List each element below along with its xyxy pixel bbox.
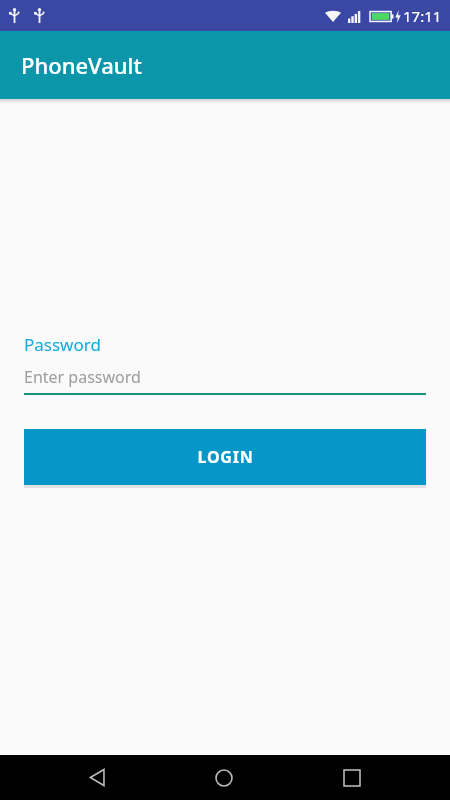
- button[interactable]: Enter password: [24, 366, 426, 395]
- staticText: LOGIN: [197, 446, 254, 468]
- staticText: Enter password: [24, 366, 141, 388]
- button[interactable]: Recent apps: [322, 755, 382, 800]
- staticText: Password: [24, 333, 101, 356]
- button[interactable]: LOGIN: [24, 429, 426, 485]
- staticText: PhoneVault: [21, 50, 142, 80]
- staticText: 17:11: [403, 6, 442, 26]
- button[interactable]: Back: [67, 755, 127, 800]
- button[interactable]: Home: [194, 755, 254, 800]
